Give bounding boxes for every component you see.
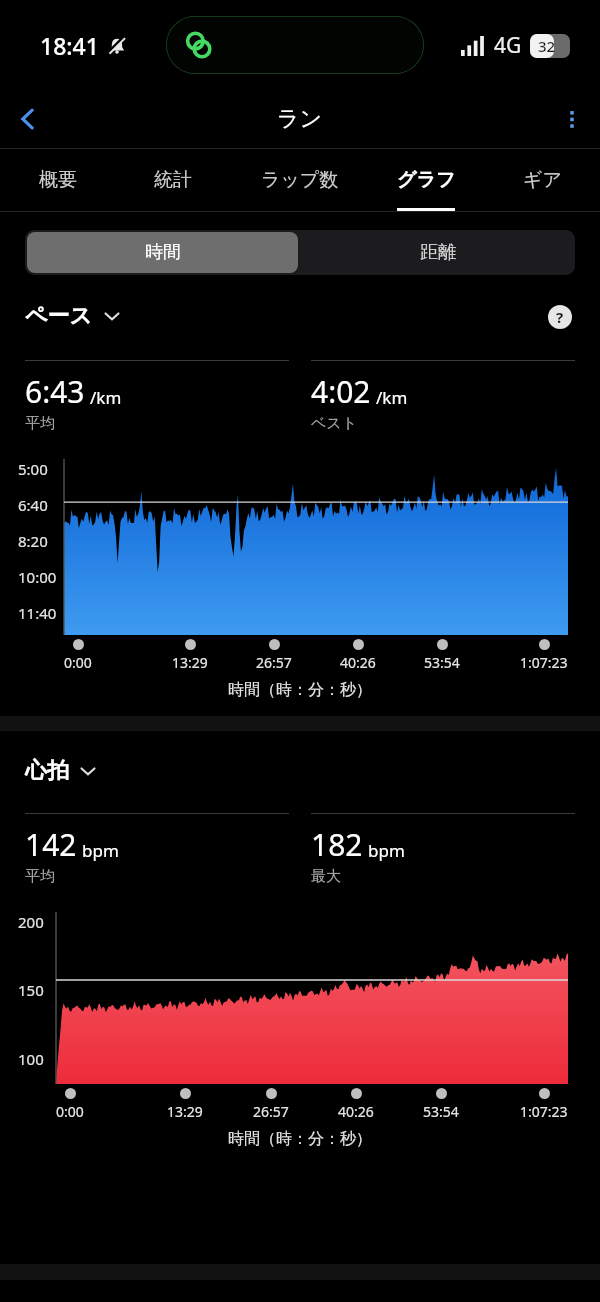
staticText: 10:00 xyxy=(18,567,58,587)
staticText: 心拍 xyxy=(25,757,69,785)
staticText: ベスト xyxy=(311,414,358,433)
staticText: 4G xyxy=(494,31,522,60)
staticText: 統計 xyxy=(154,168,192,192)
staticText: 40:26 xyxy=(338,1102,374,1121)
staticText: グラフ xyxy=(397,168,456,192)
staticText: 182 xyxy=(311,824,363,865)
staticText: 1:07:23 xyxy=(520,1102,568,1121)
staticText: 6:40 xyxy=(18,495,58,515)
staticText: 距離 xyxy=(420,241,456,264)
staticText: 6:43 xyxy=(25,371,85,412)
button[interactable]: Help xyxy=(545,302,575,332)
staticText: 平均 xyxy=(25,867,55,886)
button[interactable]: グラフ xyxy=(368,149,484,211)
staticText: 時間 xyxy=(145,241,181,264)
staticText: ラップ数 xyxy=(261,168,339,192)
staticText: 0:00 xyxy=(64,653,92,672)
staticText: 100 xyxy=(18,1049,50,1069)
staticText: 142 xyxy=(25,824,77,865)
staticText: 5:00 xyxy=(18,459,58,479)
button[interactable]: 時間 xyxy=(27,232,298,273)
staticText: 時間（時：分：秒） xyxy=(0,1129,600,1149)
staticText: 26:57 xyxy=(256,653,292,672)
staticText: 概要 xyxy=(39,168,77,192)
staticText: ギア xyxy=(523,168,562,192)
button[interactable]: 統計 xyxy=(115,149,231,211)
staticText: /km xyxy=(90,386,122,409)
staticText: ペース xyxy=(25,302,93,330)
button[interactable]: ギア xyxy=(484,149,600,211)
button[interactable]: Back xyxy=(0,91,56,147)
staticText: 13:29 xyxy=(167,1102,203,1121)
button[interactable]: 距離 xyxy=(300,230,575,275)
staticText: 時間（時：分：秒） xyxy=(0,680,600,700)
button[interactable]: More options xyxy=(544,91,600,147)
staticText: 13:29 xyxy=(172,653,208,672)
staticText: 平均 xyxy=(25,414,55,433)
staticText: 53:54 xyxy=(424,653,460,672)
button[interactable]: 心拍 xyxy=(25,757,97,785)
staticText: ラン xyxy=(277,105,323,133)
staticText: 18:41 xyxy=(40,30,99,61)
staticText: 150 xyxy=(18,980,50,1000)
button[interactable]: ラップ数 xyxy=(231,149,368,211)
staticText: bpm xyxy=(82,839,119,862)
staticText: 11:40 xyxy=(18,603,58,623)
staticText: ? xyxy=(556,307,564,327)
staticText: 26:57 xyxy=(253,1102,289,1121)
staticText: 200 xyxy=(18,912,50,932)
staticText: /km xyxy=(376,386,408,409)
staticText: 32 xyxy=(538,36,556,56)
staticText: 1:07:23 xyxy=(520,653,568,672)
staticText: 53:54 xyxy=(423,1102,459,1121)
staticText: 0:00 xyxy=(56,1102,84,1121)
button[interactable]: 概要 xyxy=(0,149,115,211)
staticText: 最大 xyxy=(311,867,341,886)
staticText: bpm xyxy=(368,839,405,862)
staticText: 4:02 xyxy=(311,371,371,412)
button[interactable]: ペース xyxy=(25,302,121,330)
staticText: 40:26 xyxy=(340,653,376,672)
staticText: 8:20 xyxy=(18,531,58,551)
